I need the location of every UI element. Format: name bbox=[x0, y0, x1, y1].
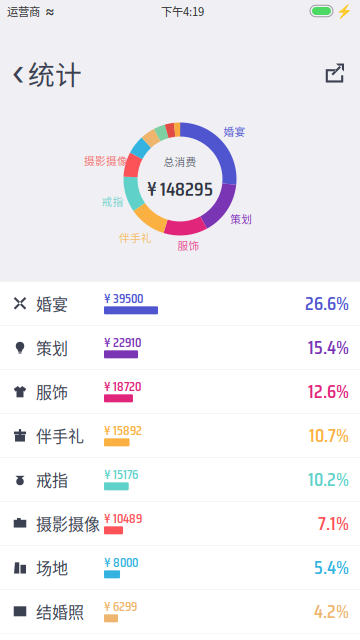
staticText: 戒指 bbox=[36, 468, 68, 491]
staticText: 婚宴 bbox=[36, 292, 68, 315]
button[interactable]: 摄影摄像 bbox=[0, 502, 360, 546]
staticText: ¥ 22910 bbox=[104, 332, 141, 353]
button[interactable]: 结婚照 bbox=[0, 590, 360, 634]
staticText: ‹ bbox=[12, 52, 24, 94]
staticText: 统计 bbox=[28, 54, 82, 92]
button[interactable]: 婚宴 bbox=[0, 282, 360, 326]
staticText: ¥ 10489 bbox=[104, 508, 142, 529]
staticText: ¥ 8000 bbox=[104, 552, 138, 573]
staticText: 结婚照 bbox=[36, 600, 84, 623]
staticText: 10.2% bbox=[308, 464, 349, 494]
staticText: ¥ 148295 bbox=[147, 173, 213, 204]
staticText: 运营商 bbox=[7, 3, 40, 19]
staticText: 10.7% bbox=[309, 420, 349, 450]
button[interactable]: 伴手礼 bbox=[0, 414, 360, 458]
staticText: 服饰 bbox=[36, 380, 68, 403]
staticText: 服饰 bbox=[177, 237, 199, 253]
staticText: ⚡ bbox=[336, 3, 353, 19]
staticText: 下午4:19 bbox=[161, 3, 204, 19]
staticText: 15.4% bbox=[308, 332, 349, 362]
staticText: ¥ 18720 bbox=[104, 376, 141, 397]
staticText: 总消费 bbox=[163, 153, 196, 169]
staticText: ¥ 6299 bbox=[104, 596, 137, 617]
staticText: ≈ bbox=[45, 2, 55, 20]
staticText: 摄影摄像 bbox=[84, 153, 128, 168]
staticText: 策划 bbox=[230, 211, 252, 226]
staticText: 伴手礼 bbox=[36, 424, 84, 447]
button[interactable]: ‹ bbox=[12, 52, 82, 94]
button[interactable]: 场地 bbox=[0, 546, 360, 590]
staticText: 5.4% bbox=[314, 552, 349, 582]
staticText: 策划 bbox=[36, 336, 68, 359]
staticText: 场地 bbox=[36, 556, 68, 579]
staticText: ¥ 15892 bbox=[104, 420, 142, 441]
staticText: 12.6% bbox=[308, 376, 349, 406]
button[interactable]: 戒指 bbox=[0, 458, 360, 502]
staticText: 戒指 bbox=[101, 193, 123, 209]
button[interactable]: 服饰 bbox=[0, 370, 360, 414]
staticText: 4.2% bbox=[314, 596, 349, 626]
staticText: 婚宴 bbox=[223, 123, 245, 139]
staticText: ¥ 39500 bbox=[104, 288, 143, 309]
staticText: 26.6% bbox=[305, 288, 349, 318]
staticText: 伴手礼 bbox=[119, 230, 152, 245]
staticText: 7.1% bbox=[318, 508, 349, 538]
button[interactable]: 策划 bbox=[0, 326, 360, 370]
staticText: 摄影摄像 bbox=[36, 512, 100, 535]
staticText: ¥ 15176 bbox=[104, 464, 138, 485]
button[interactable]: Share bbox=[325, 63, 344, 82]
